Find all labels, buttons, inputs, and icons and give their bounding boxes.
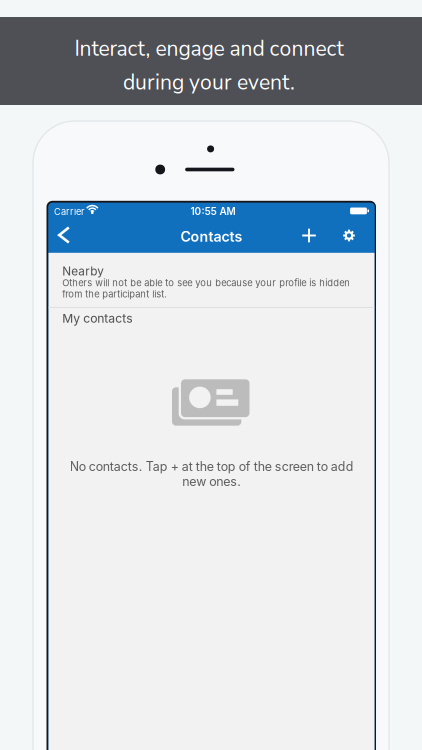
staticText: Nearby (62, 264, 104, 278)
button[interactable]: Back (47, 219, 81, 251)
staticText: Interact, engage and connect (74, 34, 343, 63)
staticText: Contacts (180, 228, 242, 245)
staticText: No contacts. Tap + at the top of the scr… (69, 459, 353, 489)
button[interactable]: Add contact (294, 220, 324, 250)
staticText: 10:55 AM (190, 205, 235, 217)
staticText: Carrier (54, 206, 84, 217)
staticText: Others will not be able to see you becau… (62, 277, 350, 300)
button[interactable]: Settings (334, 220, 364, 250)
staticText: during your event. (123, 68, 295, 97)
staticText: My contacts (62, 311, 132, 326)
